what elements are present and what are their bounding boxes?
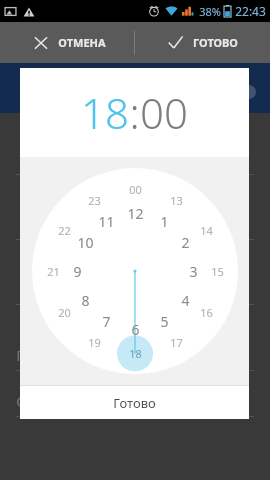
button[interactable]: ГОТОВО (135, 22, 270, 63)
staticText: 00 (140, 84, 188, 141)
staticText: 18 (81, 84, 129, 141)
staticText: Готово (113, 394, 156, 412)
staticText: 14 (200, 223, 213, 238)
staticText: 8 (81, 291, 90, 310)
staticText: 5 (160, 312, 169, 331)
staticText: 13 (170, 193, 183, 208)
staticText: 4 (181, 291, 190, 310)
staticText: 38% (199, 4, 221, 19)
staticText: 22 (58, 223, 71, 238)
staticText: 9 (73, 262, 82, 281)
staticText: 16 (200, 305, 213, 320)
staticText: 20 (58, 305, 71, 320)
staticText: ГОТОВО (193, 35, 238, 50)
staticText: Гости (16, 345, 56, 365)
staticText: 7 (102, 312, 111, 331)
staticText: ОТМЕНА (58, 35, 106, 50)
staticText: 2 (181, 233, 190, 252)
staticText: 00 (129, 182, 142, 197)
staticText: 11 (98, 212, 115, 231)
staticText: 6 (131, 320, 140, 339)
button[interactable]: 00 (140, 84, 188, 141)
staticText: 23 (88, 193, 101, 208)
staticText: 21 (47, 264, 60, 279)
staticText: 17 (170, 335, 183, 350)
button[interactable]: Готово (20, 386, 249, 419)
staticText: 19 (88, 335, 101, 350)
staticText: 1 (160, 212, 169, 231)
staticText: 10 (77, 233, 94, 252)
staticText: 12 (127, 204, 144, 223)
button[interactable]: ОТМЕНА (0, 22, 134, 63)
staticText: 22:43 (235, 3, 266, 19)
staticText: : (129, 84, 140, 141)
staticText: 18 (129, 346, 142, 361)
button[interactable]: 18 (81, 84, 129, 141)
staticText: 3 (189, 262, 198, 281)
staticText: 15 (211, 264, 224, 279)
staticText: Описание (16, 391, 89, 411)
